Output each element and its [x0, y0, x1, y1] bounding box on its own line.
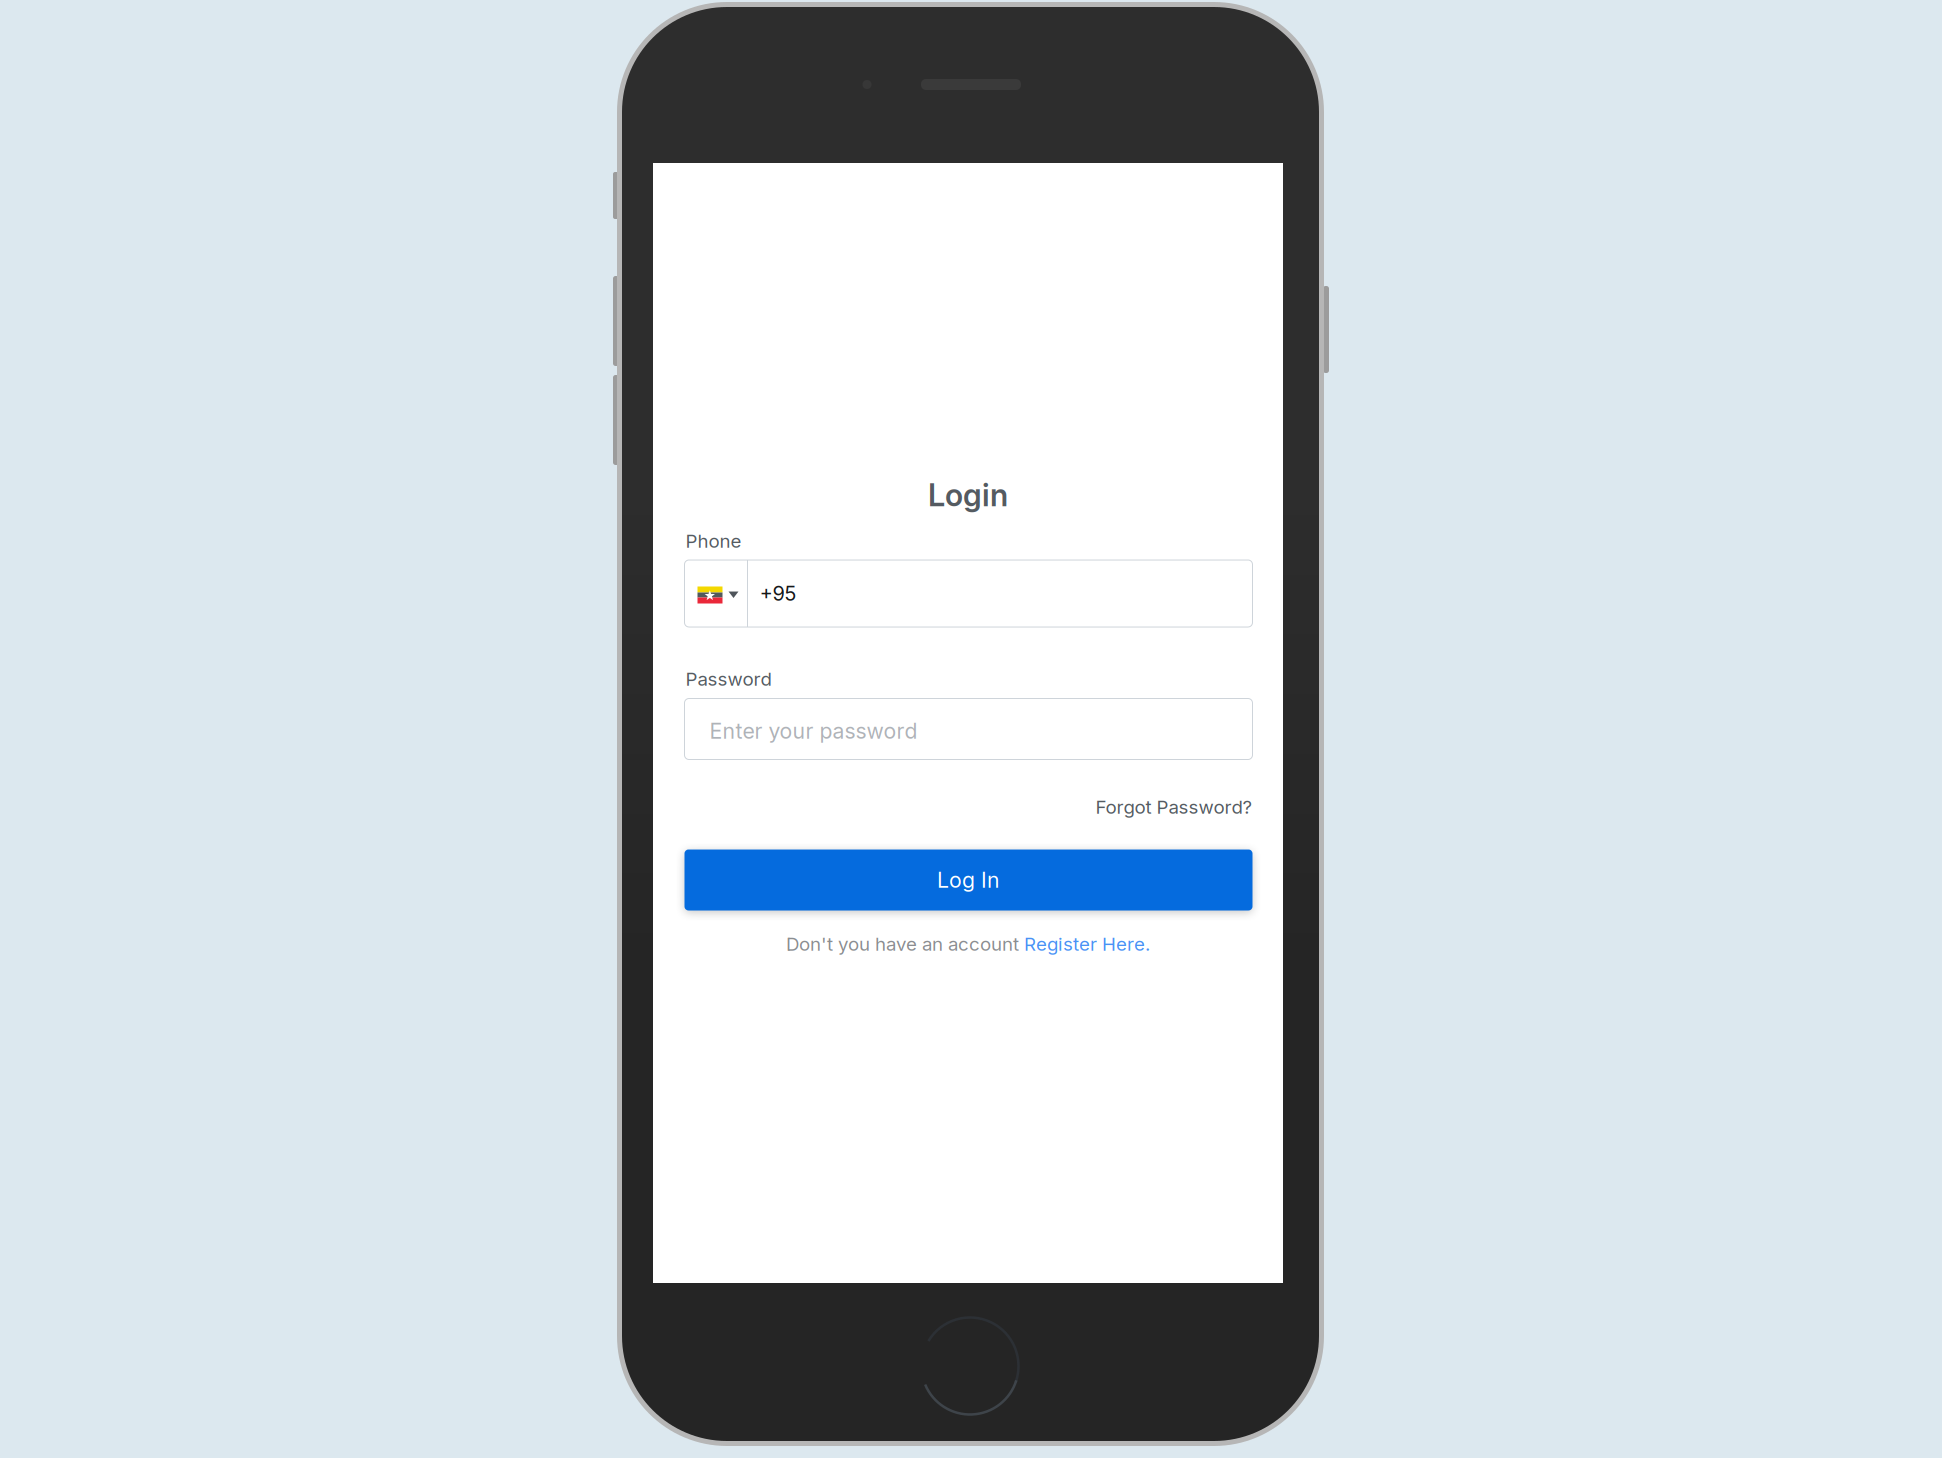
- button[interactable]: +95: [684, 560, 1252, 627]
- button[interactable]: Register Here.: [1024, 933, 1150, 955]
- button[interactable]: Enter your password: [684, 698, 1252, 759]
- staticText: Enter your password: [709, 718, 917, 744]
- staticText: Don't you have an account: [786, 933, 1024, 955]
- staticText: Login: [928, 476, 1008, 513]
- staticText: Phone: [685, 530, 741, 552]
- button[interactable]: Log In: [684, 849, 1252, 910]
- staticText: Register Here.: [1024, 933, 1150, 955]
- staticText: Log In: [937, 867, 1000, 893]
- staticText: Forgot Password?: [1095, 796, 1252, 818]
- staticText: Password: [685, 668, 771, 690]
- button[interactable]: Forgot Password?: [684, 796, 1252, 818]
- staticText: +95: [759, 581, 796, 606]
